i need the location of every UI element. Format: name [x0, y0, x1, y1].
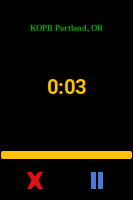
staticText: 0:03 — [47, 75, 86, 99]
staticText: KOPB Portland, OR — [30, 23, 103, 33]
button[interactable]: Pause — [91, 172, 103, 189]
button[interactable]: Stop — [27, 172, 43, 189]
